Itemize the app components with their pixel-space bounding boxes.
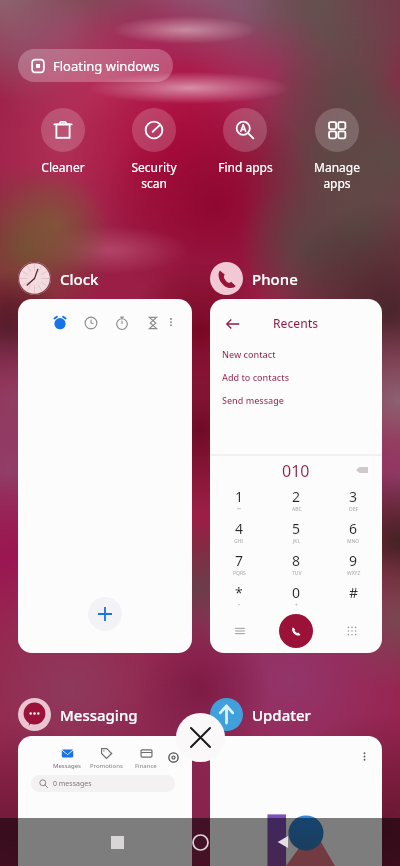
- staticText: 8: [292, 551, 301, 570]
- other: Keypad options: [234, 625, 246, 637]
- other: Dialpad: [346, 625, 358, 637]
- button[interactable]: Messaging: [18, 698, 138, 731]
- button[interactable]: 3: [325, 484, 382, 516]
- button[interactable]: 4: [210, 516, 268, 548]
- button[interactable]: 2: [268, 484, 325, 516]
- button[interactable]: #: [325, 580, 382, 612]
- staticText: Finance: [135, 762, 157, 770]
- button[interactable]: New contact: [210, 348, 382, 371]
- staticText: 5: [292, 519, 301, 538]
- button[interactable]: 7: [210, 548, 268, 580]
- staticText: Floating windows: [53, 57, 160, 75]
- staticText: Manage apps: [314, 159, 360, 191]
- staticText: Security scan: [131, 159, 177, 191]
- staticText: TUV: [292, 570, 302, 577]
- staticText: Messaging: [60, 705, 138, 725]
- button[interactable]: Close all: [176, 713, 225, 762]
- button[interactable]: Recents: [89, 818, 145, 866]
- staticText: 6: [349, 519, 358, 538]
- button[interactable]: 5: [268, 516, 325, 548]
- button[interactable]: 1: [210, 484, 268, 516]
- staticText: New contact: [222, 348, 276, 360]
- staticText: GHI: [234, 538, 244, 545]
- staticText: 2: [292, 487, 301, 506]
- staticText: Messages: [53, 762, 81, 770]
- staticText: #: [349, 583, 359, 602]
- button[interactable]: Add to contacts: [210, 371, 382, 394]
- button[interactable]: Manage apps: [291, 108, 383, 191]
- button[interactable]: Settings: [163, 747, 183, 767]
- staticText: 3: [349, 487, 358, 506]
- staticText: 0: [292, 583, 301, 602]
- button[interactable]: Promotions: [84, 747, 128, 770]
- staticText: 010: [282, 460, 310, 482]
- staticText: Clock: [60, 269, 99, 289]
- button[interactable]: Messages: [45, 747, 89, 770]
- button[interactable]: Send message: [210, 394, 382, 417]
- button[interactable]: Updater: [210, 698, 311, 731]
- button[interactable]: 0 messages: [31, 775, 175, 792]
- staticText: DEF: [349, 506, 359, 513]
- staticText: Find apps: [218, 159, 273, 175]
- staticText: 1: [235, 487, 244, 506]
- button[interactable]: More options: [165, 316, 177, 330]
- button[interactable]: Add alarm: [88, 597, 122, 631]
- button[interactable]: Phone: [210, 262, 298, 295]
- staticText: MNO: [347, 538, 360, 545]
- button[interactable]: 9: [325, 548, 382, 580]
- staticText: ••: [237, 506, 241, 513]
- staticText: WXYZ: [347, 570, 361, 577]
- other: More options: [359, 751, 370, 762]
- button[interactable]: Call: [279, 614, 313, 648]
- other: Back: [226, 317, 240, 331]
- staticText: Recents: [273, 315, 319, 331]
- staticText: Send message: [222, 394, 285, 406]
- staticText: Updater: [252, 705, 311, 725]
- button[interactable]: Floating windows: [18, 49, 173, 82]
- staticText: 0 messages: [53, 779, 92, 789]
- button[interactable]: Home: [172, 818, 228, 866]
- button[interactable]: *: [210, 580, 268, 612]
- button[interactable]: Cleaner: [17, 108, 108, 175]
- other: Delete: [356, 464, 368, 476]
- button[interactable]: Clock: [18, 262, 99, 295]
- button[interactable]: Security scan: [108, 108, 199, 191]
- button[interactable]: Back: [210, 299, 382, 653]
- staticText: +: [295, 602, 298, 609]
- button[interactable]: Find apps: [199, 108, 291, 175]
- staticText: ABC: [292, 506, 302, 513]
- staticText: JKL: [293, 538, 301, 545]
- button[interactable]: Back: [255, 818, 311, 866]
- staticText: Add to contacts: [222, 371, 290, 383]
- staticText: Phone: [252, 269, 298, 289]
- staticText: Promotions: [90, 762, 123, 770]
- button[interactable]: 6: [325, 516, 382, 548]
- staticText: Cleaner: [41, 159, 85, 175]
- staticText: 7: [235, 551, 244, 570]
- button[interactable]: Finance: [124, 747, 168, 770]
- staticText: *: [235, 583, 243, 602]
- staticText: 4: [235, 519, 244, 538]
- staticText: •: [238, 602, 240, 609]
- button[interactable]: 0: [268, 580, 325, 612]
- button[interactable]: Messages: [18, 736, 192, 866]
- button[interactable]: More options: [18, 299, 192, 653]
- staticText: 9: [349, 551, 358, 570]
- button[interactable]: More options: [210, 736, 382, 866]
- button[interactable]: 8: [268, 548, 325, 580]
- staticText: PQRS: [233, 570, 246, 577]
